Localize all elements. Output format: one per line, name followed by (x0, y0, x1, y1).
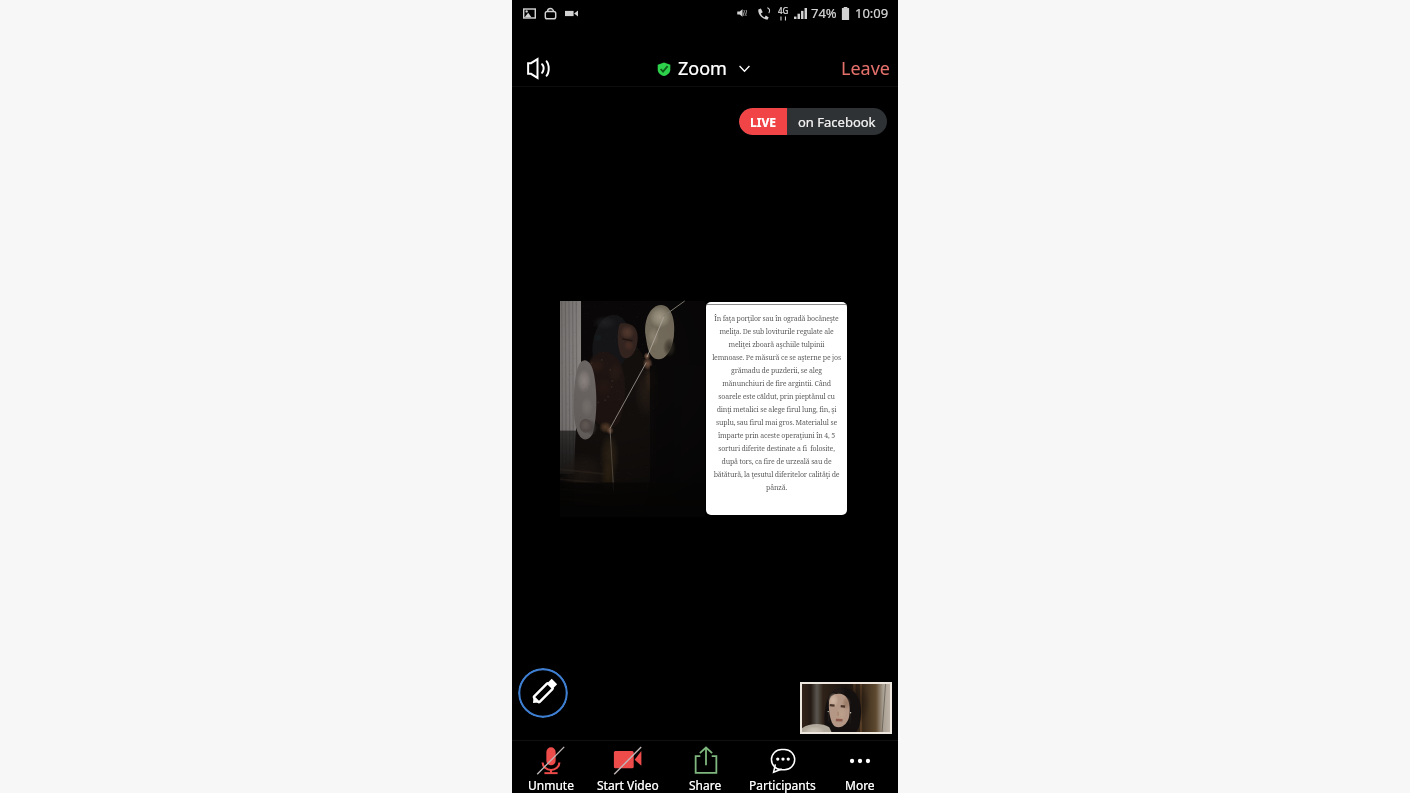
staticText: Unmute (528, 777, 574, 793)
button[interactable]: Speaker (521, 51, 555, 85)
staticText: More (845, 777, 875, 793)
staticText: Share (689, 777, 722, 793)
button[interactable]: Participants (744, 741, 821, 793)
staticText: on Facebook (798, 113, 876, 131)
staticText: În faţa porţilor sau în ogradă bocăneşte… (712, 314, 841, 492)
button[interactable]: Annotate (518, 668, 568, 718)
staticText: 10:09 (855, 4, 889, 22)
button[interactable]: Self view (800, 682, 892, 734)
staticText: Zoom (678, 56, 727, 81)
staticText: Start Video (597, 777, 659, 793)
button[interactable]: More (821, 741, 898, 793)
staticText: 4G (778, 5, 789, 16)
button[interactable]: Unmute (512, 741, 589, 793)
staticText: Leave (841, 56, 890, 81)
staticText: LIVE (750, 114, 776, 130)
button[interactable]: LIVE (739, 108, 887, 135)
button[interactable]: Share (667, 741, 744, 793)
button[interactable]: Start Video (589, 741, 666, 793)
staticText: Participants (749, 777, 816, 793)
staticText: 74% (811, 4, 837, 22)
button[interactable]: Leave (833, 50, 898, 87)
button[interactable]: Zoom (657, 56, 751, 81)
